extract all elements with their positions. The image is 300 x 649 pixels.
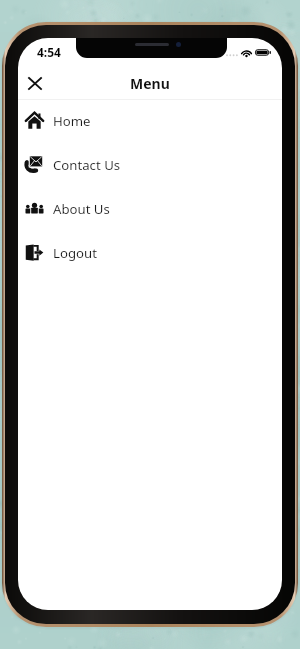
staticText: Menu <box>130 74 170 93</box>
button[interactable]: Home <box>18 100 282 144</box>
staticText: Contact Us <box>53 156 121 174</box>
staticText: 4:54 <box>37 44 61 60</box>
staticText: Logout <box>53 244 97 262</box>
button[interactable]: Contact Us <box>18 144 282 188</box>
staticText: Home <box>53 112 91 130</box>
button[interactable]: Close menu <box>20 68 50 98</box>
staticText: About Us <box>53 200 110 218</box>
button[interactable]: Logout <box>18 232 282 276</box>
button[interactable]: About Us <box>18 188 282 232</box>
